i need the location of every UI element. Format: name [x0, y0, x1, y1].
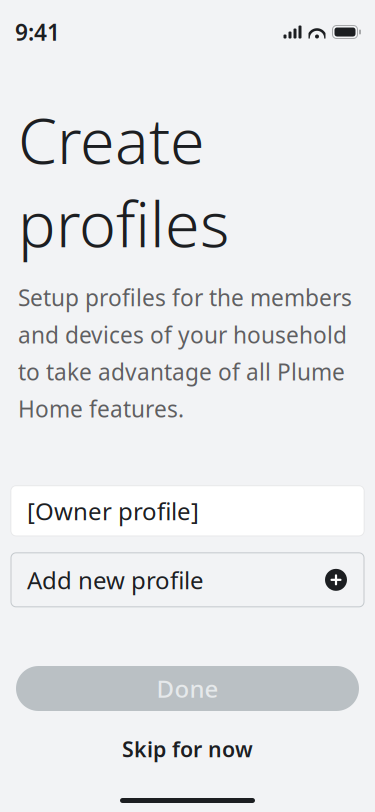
button[interactable]: Skip for now: [0, 737, 375, 761]
staticText: Add new profile: [27, 564, 204, 596]
button[interactable]: [Owner profile]: [0, 486, 375, 536]
staticText: 9:41: [15, 17, 60, 47]
button[interactable]: Done: [0, 666, 375, 711]
staticText: Skip for now: [122, 735, 253, 763]
button[interactable]: Add new profile: [0, 553, 375, 607]
staticText: [Owner profile]: [27, 495, 199, 527]
staticText: Create profiles: [18, 98, 229, 264]
staticText: Setup profiles for the members and devic…: [18, 282, 352, 424]
staticText: Done: [156, 673, 218, 704]
